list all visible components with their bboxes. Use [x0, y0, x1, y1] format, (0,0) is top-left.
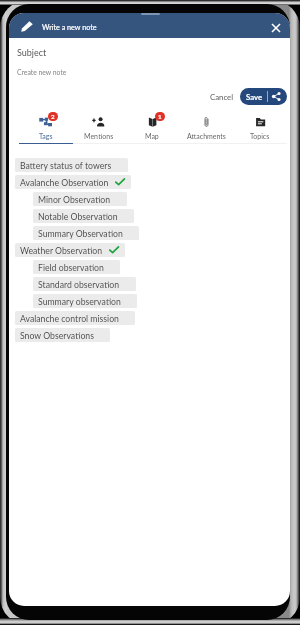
staticText: Create new note — [17, 68, 67, 76]
button[interactable]: Close — [266, 16, 286, 36]
button[interactable]: Cancel — [207, 88, 237, 105]
staticText: Standard observation — [38, 279, 120, 289]
staticText: Avalanche control mission — [20, 313, 119, 323]
staticText: Summary Observation — [38, 228, 123, 238]
button[interactable]: Mentions — [72, 116, 125, 143]
button[interactable]: Avalanche control mission — [15, 311, 135, 325]
staticText: Field observation — [38, 262, 104, 272]
button[interactable]: Avalanche Observation — [15, 175, 131, 189]
button[interactable]: Save — [240, 88, 287, 105]
staticText: Weather Observation — [20, 245, 103, 255]
button[interactable]: Standard observation — [33, 277, 136, 291]
staticText: 2 — [51, 113, 55, 120]
button[interactable]: Notable Observation — [33, 209, 134, 223]
button[interactable]: Snow Observations — [15, 328, 110, 342]
staticText: Cancel — [210, 92, 234, 101]
button[interactable]: Summary Observation — [33, 226, 139, 240]
staticText: Snow Observations — [20, 330, 94, 340]
staticText: Save — [246, 92, 263, 101]
button[interactable]: Attachments — [179, 116, 233, 143]
button[interactable]: Weather Observation — [15, 243, 125, 257]
staticText: Topics — [250, 132, 270, 140]
staticText: Map — [145, 132, 159, 140]
staticText: Tags — [39, 132, 53, 140]
button[interactable]: 2 — [19, 116, 72, 143]
staticText: Write a new note — [42, 23, 97, 32]
button[interactable]: Summary observation — [33, 294, 137, 308]
button[interactable]: Minor Observation — [33, 192, 127, 206]
button[interactable]: Topics — [233, 116, 287, 143]
staticText: Summary observation — [38, 296, 121, 306]
button[interactable]: Field observation — [33, 260, 120, 274]
staticText: Subject — [17, 47, 47, 58]
button[interactable]: 1 — [125, 116, 179, 143]
staticText: Battery status of towers — [20, 160, 112, 170]
staticText: Mentions — [84, 132, 114, 140]
staticText: Avalanche Observation — [20, 177, 109, 187]
staticText: 1 — [158, 113, 162, 120]
staticText: Notable Observation — [38, 211, 118, 221]
button[interactable]: Battery status of towers — [15, 158, 128, 172]
staticText: Minor Observation — [38, 194, 111, 204]
staticText: Attachments — [187, 132, 226, 140]
